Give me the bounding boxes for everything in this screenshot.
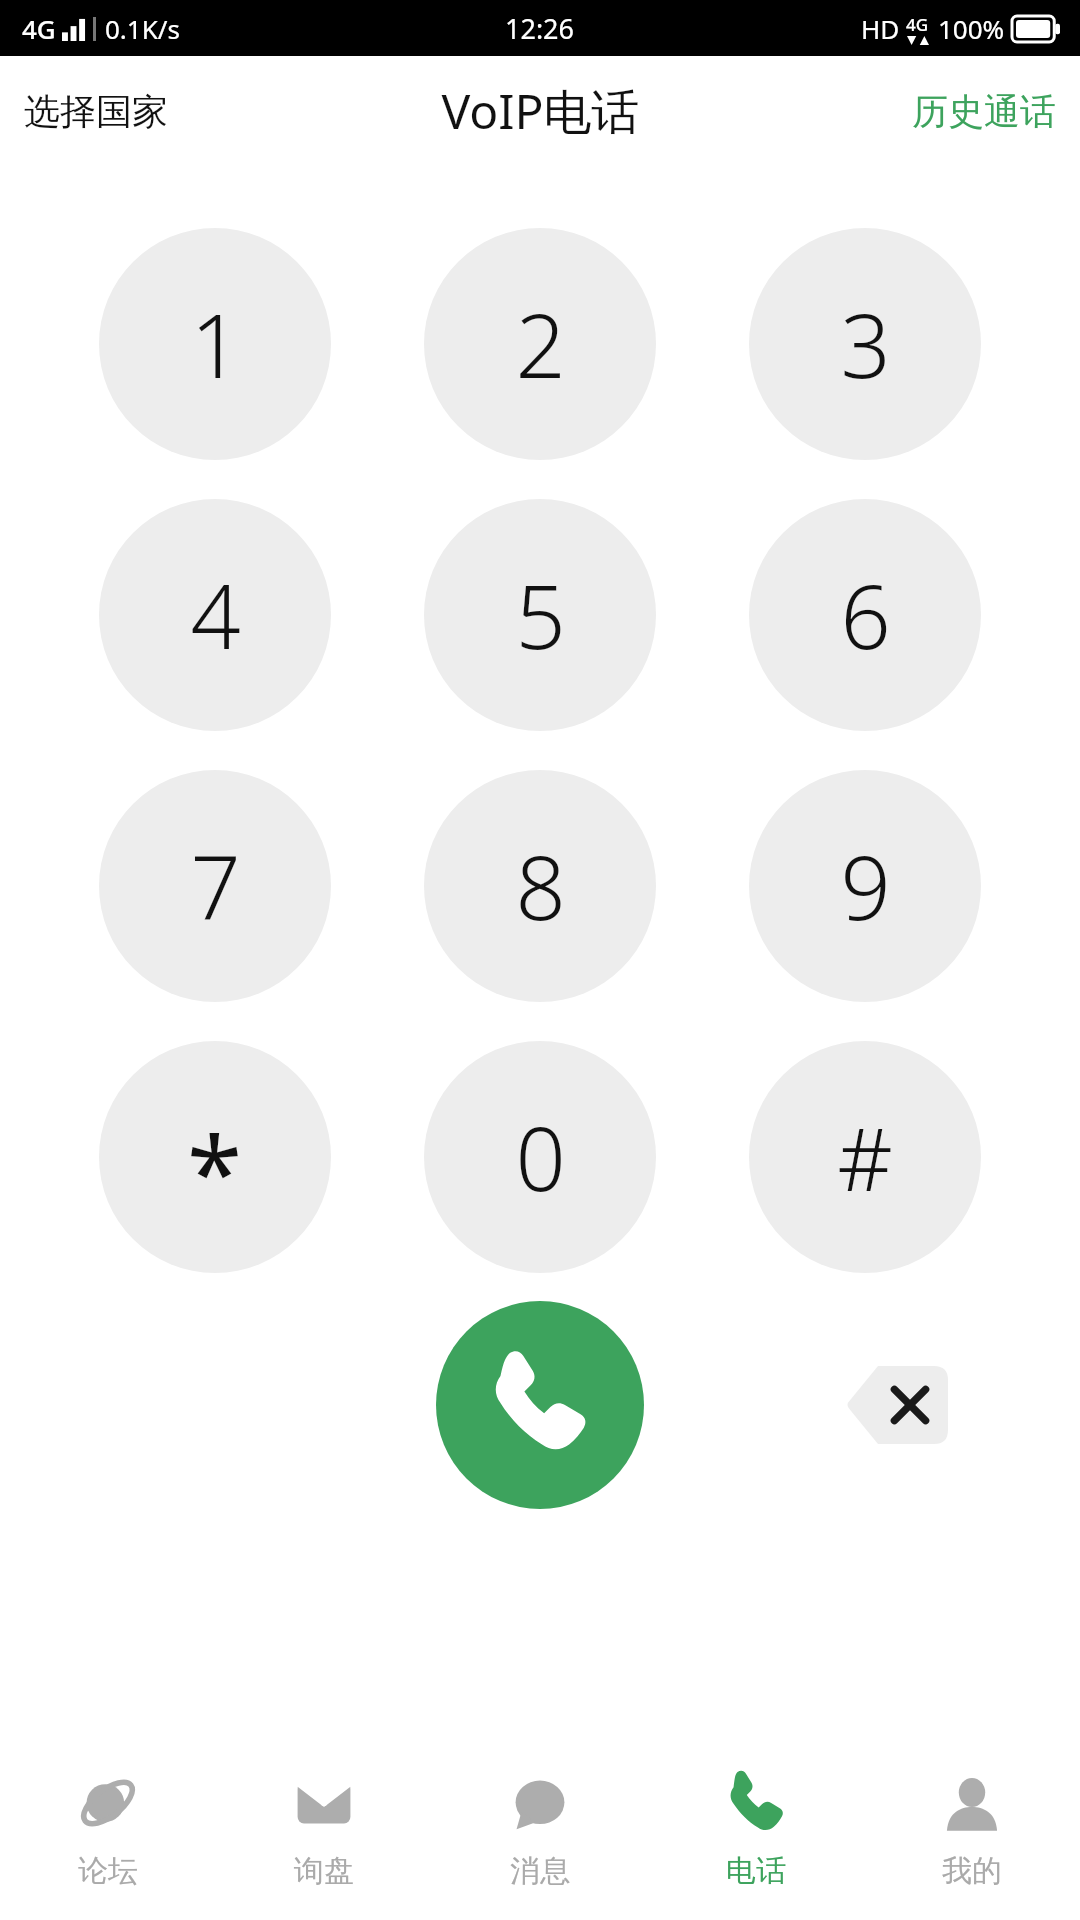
button[interactable]: 3	[749, 228, 981, 460]
staticText: 100%	[938, 11, 1005, 46]
button[interactable]: Call	[436, 1301, 644, 1509]
staticText: 5	[515, 555, 566, 675]
button[interactable]: Delete	[848, 1366, 948, 1444]
staticText: *	[187, 1103, 243, 1239]
staticText: 0.1K/s	[105, 11, 180, 46]
button[interactable]: 我的	[864, 1744, 1080, 1920]
staticText: 4	[190, 555, 241, 675]
staticText: 论坛	[78, 1852, 138, 1890]
button[interactable]: 0	[424, 1041, 656, 1273]
staticText: 7	[190, 826, 241, 946]
button[interactable]: 询盘	[216, 1744, 432, 1920]
staticText: 0	[515, 1097, 566, 1217]
staticText: 电话	[726, 1852, 786, 1890]
button[interactable]: 7	[99, 770, 331, 1002]
button[interactable]: 4	[99, 499, 331, 731]
staticText: 询盘	[294, 1852, 354, 1890]
button[interactable]: #	[749, 1041, 981, 1273]
staticText: 8	[515, 826, 566, 946]
staticText: 历史通话	[912, 89, 1056, 134]
staticText: HD	[861, 11, 900, 46]
staticText: 4G	[906, 13, 929, 36]
staticText: 1	[190, 284, 241, 404]
staticText: 2	[515, 284, 566, 404]
button[interactable]: 选择国家	[0, 75, 192, 148]
button[interactable]: 历史通话	[888, 75, 1080, 148]
button[interactable]: 9	[749, 770, 981, 1002]
button[interactable]: 2	[424, 228, 656, 460]
staticText: #	[837, 1099, 893, 1216]
button[interactable]: 6	[749, 499, 981, 731]
button[interactable]: 论坛	[0, 1744, 216, 1920]
staticText: 6	[840, 555, 891, 675]
staticText: 4G	[22, 11, 56, 46]
staticText: VoIP电话	[441, 78, 640, 144]
button[interactable]: 8	[424, 770, 656, 1002]
button[interactable]: 电话	[648, 1744, 864, 1920]
staticText: 12:26	[505, 10, 575, 47]
button[interactable]: 消息	[432, 1744, 648, 1920]
button[interactable]: 5	[424, 499, 656, 731]
staticText: 选择国家	[24, 89, 168, 134]
staticText: 3	[840, 284, 891, 404]
staticText: 消息	[510, 1852, 570, 1890]
staticText: 9	[840, 826, 891, 946]
staticText: 我的	[942, 1852, 1002, 1890]
button[interactable]: *	[99, 1041, 331, 1273]
button[interactable]: 1	[99, 228, 331, 460]
